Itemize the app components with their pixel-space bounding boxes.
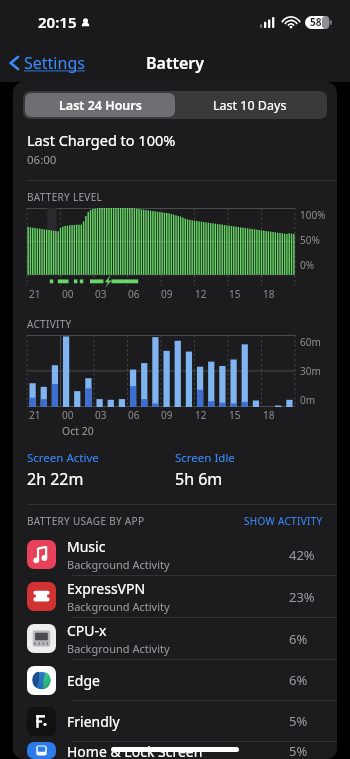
staticText: Friendly bbox=[67, 712, 120, 731]
staticText: ACTIVITY bbox=[27, 317, 72, 331]
staticText: 12 bbox=[195, 408, 207, 422]
staticText: 06 bbox=[128, 287, 140, 301]
staticText: 23% bbox=[289, 588, 323, 606]
staticText: 50% bbox=[300, 233, 320, 247]
staticText: 15 bbox=[229, 287, 241, 301]
button[interactable]: Home & Lock Screen bbox=[13, 742, 337, 759]
staticText: Settings bbox=[24, 52, 85, 74]
button[interactable]: SHOW ACTIVITY bbox=[244, 514, 323, 528]
button[interactable]: Edge bbox=[13, 660, 337, 701]
staticText: 18 bbox=[263, 287, 275, 301]
button[interactable]: Last 10 Days bbox=[175, 93, 325, 117]
staticText: 6% bbox=[289, 630, 323, 648]
staticText: 03 bbox=[95, 408, 107, 422]
staticText: CPU-x bbox=[67, 621, 107, 640]
staticText: 00 bbox=[62, 408, 74, 422]
button[interactable]: CPU-x bbox=[13, 618, 337, 660]
staticText: 0% bbox=[300, 258, 315, 272]
staticText: 30m bbox=[300, 364, 321, 378]
staticText: 06:00 bbox=[27, 152, 57, 168]
staticText: Screen Active bbox=[27, 450, 99, 466]
staticText: Last 24 Hours bbox=[59, 97, 142, 114]
staticText: 5% bbox=[289, 712, 323, 730]
staticText: 06 bbox=[128, 408, 140, 422]
staticText: 5h 6m bbox=[175, 468, 223, 490]
button[interactable]: ExpressVPN bbox=[13, 576, 337, 618]
staticText: 6% bbox=[289, 671, 323, 689]
button[interactable]: Settings bbox=[0, 48, 93, 78]
staticText: Last 10 Days bbox=[213, 97, 287, 114]
staticText: Screen Idle bbox=[175, 450, 235, 466]
staticText: Oct 20 bbox=[62, 424, 94, 438]
staticText: Background Activity bbox=[67, 641, 170, 656]
staticText: 58 bbox=[310, 15, 322, 29]
staticText: Background Activity bbox=[67, 557, 170, 572]
staticText: BATTERY LEVEL bbox=[27, 190, 103, 204]
staticText: 15 bbox=[229, 408, 241, 422]
staticText: 03 bbox=[95, 287, 107, 301]
staticText: 12 bbox=[195, 287, 207, 301]
staticText: 09 bbox=[161, 287, 173, 301]
staticText: Music bbox=[67, 537, 106, 556]
button[interactable]: Friendly bbox=[13, 701, 337, 742]
button[interactable]: Music bbox=[13, 534, 337, 576]
staticText: SHOW ACTIVITY bbox=[244, 514, 323, 528]
staticText: 09 bbox=[161, 408, 173, 422]
staticText: Background Activity bbox=[67, 599, 170, 614]
staticText: Home & Lock Screen bbox=[67, 742, 203, 759]
staticText: Edge bbox=[67, 671, 100, 690]
staticText: BATTERY USAGE BY APP bbox=[27, 514, 145, 528]
staticText: Battery bbox=[146, 52, 204, 74]
staticText: 18 bbox=[263, 408, 275, 422]
staticText: 00 bbox=[62, 287, 74, 301]
staticText: ExpressVPN bbox=[67, 579, 146, 598]
staticText: 42% bbox=[289, 546, 323, 564]
staticText: 21 bbox=[29, 408, 41, 422]
staticText: 0m bbox=[300, 393, 316, 407]
staticText: 60m bbox=[300, 335, 321, 349]
staticText: 100% bbox=[300, 208, 326, 222]
staticText: 5% bbox=[289, 742, 323, 759]
staticText: 20:15 bbox=[38, 12, 77, 32]
staticText: 21 bbox=[29, 287, 41, 301]
button[interactable]: Last 24 Hours bbox=[25, 93, 175, 117]
staticText: 2h 22m bbox=[27, 468, 84, 490]
staticText: Last Charged to 100% bbox=[27, 130, 176, 150]
